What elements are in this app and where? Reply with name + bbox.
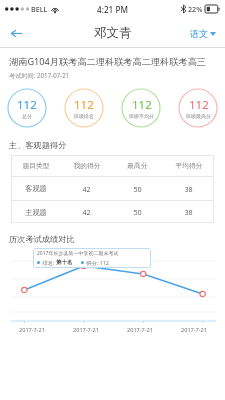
staticText: 班级最高分 [186,113,211,119]
button[interactable]: 112 [7,88,47,128]
staticText: 最高分 [127,161,148,170]
staticText: 2017-7-21 [73,326,99,334]
staticText: 第十名 [56,259,73,266]
button[interactable]: 2017年长沙县第一中学初二期末考试 [37,250,147,266]
staticText: 班级平均分 [129,113,154,119]
staticText: 客观题 [25,184,47,193]
staticText: 湖南G104月联考高二理科联考高二理科联考高三 [9,55,207,68]
staticText: 得分: 112 [86,259,109,266]
staticText: 42 [82,207,91,217]
staticText: 112 [132,97,152,113]
staticText: 38 [184,207,193,217]
staticText: 题目类型 [22,161,50,170]
staticText: 主、客观题得分 [9,140,67,150]
staticText: 2017-7-21 [19,326,45,334]
staticText: 2017-7-21 [181,326,207,334]
staticText: 112 [189,97,209,113]
staticText: 邓文青 [94,25,132,41]
staticText: 语文 [190,28,208,39]
staticText: 班级排名 [74,113,94,119]
staticText: 2017-7-21 [127,326,153,334]
staticText: 4:21 PM [97,4,128,15]
button[interactable]: 112 [178,88,218,128]
staticText: 2017年长沙县第一中学初二期末考试 [37,250,119,257]
button[interactable]: 112 [121,88,161,128]
staticText: 排名: [42,259,56,266]
staticText: 22% [188,4,203,14]
staticText: 50 [133,207,142,217]
staticText: 我的得分 [73,161,101,170]
staticText: 50 [133,184,142,194]
button[interactable]: Back [3,20,29,46]
staticText: 总分 [22,113,32,119]
staticText: 112 [74,97,94,113]
staticText: 考试时间: 2017-07-21 [9,71,70,79]
staticText: 主观题 [25,208,47,217]
staticText: 38 [184,184,193,194]
staticText: 42 [82,184,91,194]
staticText: 平均得分 [175,161,203,170]
button[interactable]: 语文 [187,25,219,42]
button[interactable]: 112 [64,88,104,128]
staticText: BELL [31,4,48,14]
staticText: 112 [17,97,37,113]
staticText: 历次考试成绩对比 [9,234,75,244]
